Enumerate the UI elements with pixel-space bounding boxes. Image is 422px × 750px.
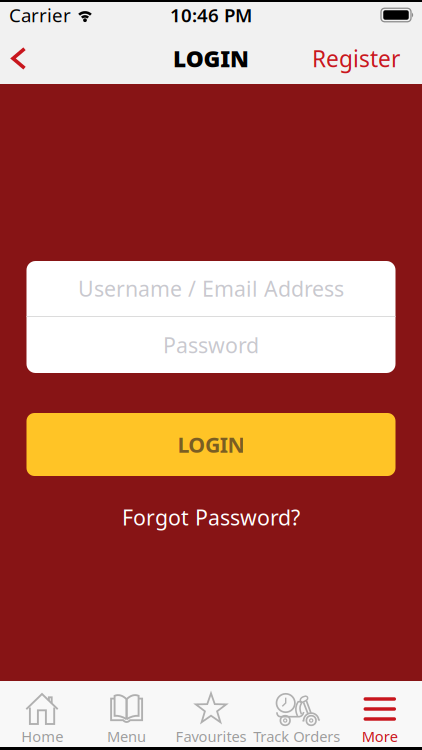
button[interactable]: Username / Email Address [26,261,395,316]
staticText: LOGIN [173,43,249,73]
staticText: Register [312,43,400,73]
staticText: Forgot Password? [122,503,300,531]
button[interactable]: Menu [84,681,169,747]
button[interactable]: LOGIN [26,413,395,476]
button[interactable]: Home [0,681,84,747]
button[interactable]: More [338,681,422,747]
button[interactable]: Forgot Password? [122,503,300,531]
staticText: Track Orders [253,726,340,746]
button[interactable]: Favourites [169,681,253,747]
button[interactable]: Track Orders [253,681,338,747]
staticText: Menu [107,726,146,746]
staticText: Password [163,331,259,359]
staticText: Home [21,726,63,746]
staticText: 10:46 PM [170,3,252,27]
button[interactable] [0,33,27,84]
staticText: Username / Email Address [78,274,344,303]
staticText: Carrier [9,3,71,27]
button[interactable]: Password [26,317,395,373]
button[interactable]: Register [312,29,422,87]
staticText: Favourites [175,726,246,746]
staticText: LOGIN [178,430,244,459]
staticText: More [362,726,398,746]
